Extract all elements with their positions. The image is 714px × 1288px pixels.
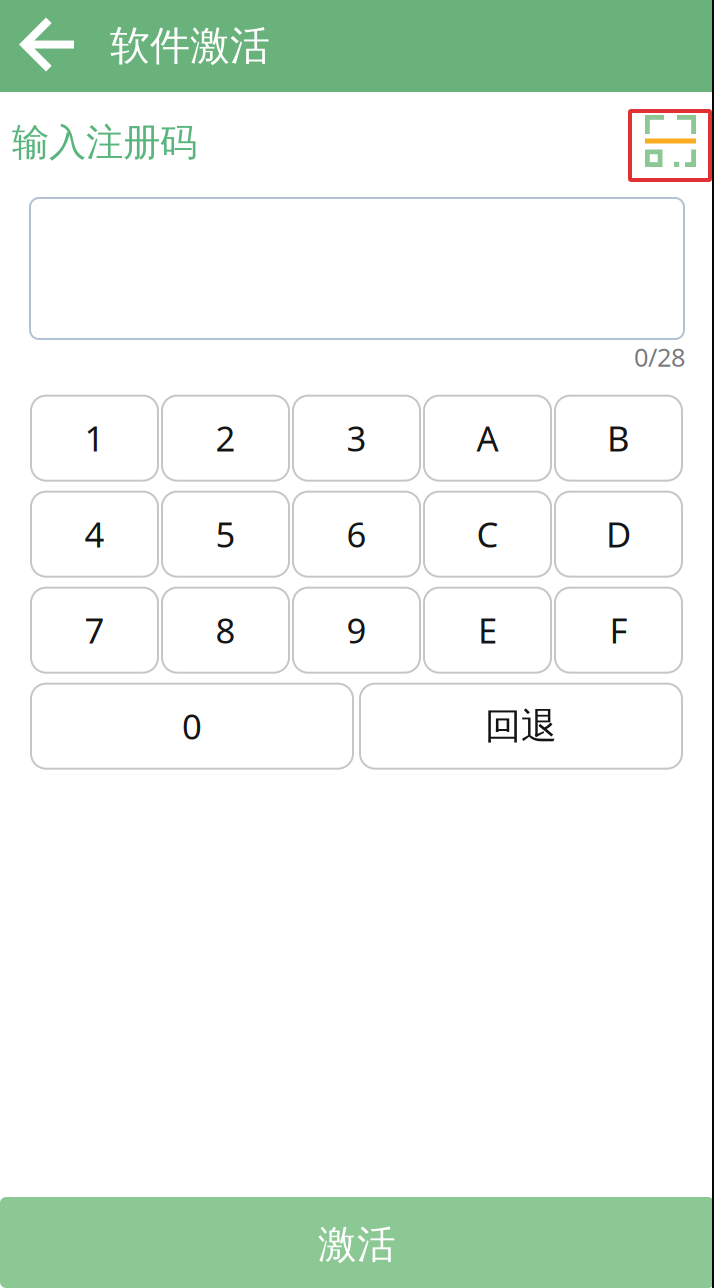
staticText: B [607,415,630,461]
staticText: 4 [84,511,104,557]
staticText: 8 [215,607,235,653]
button[interactable]: 2 [162,396,289,481]
button[interactable]: 6 [293,492,420,577]
button[interactable]: 回退 [360,684,682,769]
button[interactable]: 0 [31,684,353,769]
button[interactable]: 4 [31,492,158,577]
staticText: 软件激活 [110,21,270,70]
staticText: F [609,607,627,653]
staticText: C [476,511,498,557]
staticText: 回退 [485,704,557,748]
button[interactable]: 激活 [0,1197,714,1288]
staticText: 2 [215,415,235,461]
staticText: 7 [84,607,104,653]
button[interactable]: 8 [162,588,289,673]
staticText: 输入注册码 [12,120,197,165]
staticText: 3 [346,415,366,461]
staticText: 激活 [318,1221,396,1268]
button[interactable]: Scan QR code [630,105,714,180]
button[interactable]: C [424,492,551,577]
button[interactable]: F [555,588,682,673]
staticText: 1 [84,415,104,461]
button[interactable]: Registration code [0,189,684,339]
button[interactable]: D [555,492,682,577]
staticText: 0/28 [634,340,685,374]
staticText: E [478,607,497,653]
button[interactable]: 3 [293,396,420,481]
staticText: 6 [346,511,366,557]
button[interactable]: 9 [293,588,420,673]
staticText: D [606,511,631,557]
button[interactable]: Back [0,0,110,92]
button[interactable]: E [424,588,551,673]
button[interactable]: B [555,396,682,481]
button[interactable]: A [424,396,551,481]
button[interactable]: 5 [162,492,289,577]
staticText: A [476,415,498,461]
button[interactable]: 1 [31,396,158,481]
staticText: 0 [182,703,202,749]
staticText: 5 [215,511,235,557]
button[interactable]: 7 [31,588,158,673]
staticText: 9 [346,607,366,653]
